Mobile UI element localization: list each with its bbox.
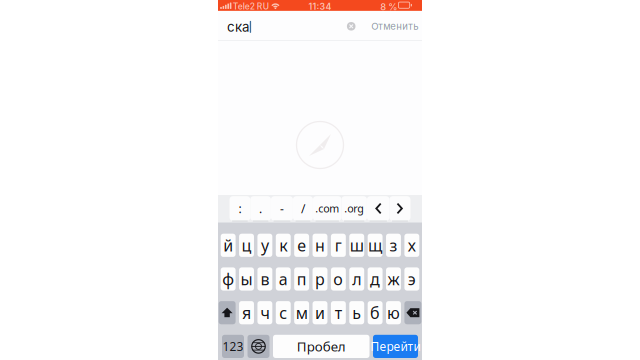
button[interactable]: ш [349,234,364,257]
staticText: 8 % [380,1,397,12]
staticText: 11:34 [308,1,331,12]
button[interactable]: Пробел [273,335,369,358]
button[interactable]: я [239,301,254,324]
staticText: Отменить [371,20,418,32]
button[interactable]: Отменить [367,15,422,37]
staticText: Tele2 RU [233,1,269,11]
staticText: п [297,268,307,290]
staticText: л [352,268,361,290]
staticText: ска [227,19,249,35]
staticText: Перейти [370,338,420,354]
button[interactable]: в [257,267,272,291]
button[interactable]: н [313,234,327,257]
staticText: ф [222,268,234,290]
button[interactable]: к [276,234,291,257]
staticText: р [315,268,325,290]
staticText: - [280,200,284,216]
button[interactable]: ь [349,301,364,324]
staticText: к [279,235,287,256]
button[interactable]: р [313,267,327,291]
staticText: о [333,268,343,290]
button[interactable]: м [294,301,309,324]
staticText: я [242,302,251,323]
staticText: а [279,268,288,290]
button[interactable]: Previous field [367,196,389,221]
button[interactable]: ц [239,234,254,257]
staticText: б [370,302,380,323]
button[interactable]: ф [221,267,236,291]
button[interactable]: а [276,267,291,291]
staticText: .org [344,201,364,216]
button[interactable]: г [331,234,346,257]
staticText: ж [387,268,399,290]
staticText: у [261,235,269,256]
button[interactable]: Next field [389,196,410,221]
staticText: щ [368,235,382,256]
button[interactable]: .com [313,196,341,221]
button[interactable]: л [349,267,364,291]
staticText: и [315,302,325,323]
button[interactable]: Next keyboard [247,335,269,358]
button[interactable]: .org [341,196,367,221]
staticText: .com [315,201,339,216]
staticText: г [335,235,342,256]
staticText: м [296,302,308,323]
button[interactable]: щ [368,234,383,257]
staticText: х [408,235,416,256]
staticText: ч [260,302,269,323]
button[interactable]: Clear text [341,16,361,36]
button[interactable]: ю [386,301,401,324]
button[interactable]: у [257,234,272,257]
button[interactable]: : [230,196,250,221]
staticText: . [259,200,262,216]
button[interactable]: с [276,301,291,324]
staticText: ю [387,302,400,323]
staticText: н [315,235,325,256]
button[interactable]: з [386,234,401,257]
staticText: е [297,235,306,256]
button[interactable]: Shift [219,301,236,324]
staticText: д [370,268,380,290]
staticText: ы [240,268,252,290]
staticText: ш [350,235,364,256]
staticText: / [301,200,305,216]
button[interactable]: Delete [404,301,421,324]
button[interactable]: т [331,301,346,324]
button[interactable]: 123 [222,335,244,358]
staticText: з [389,235,397,256]
staticText: в [260,268,269,290]
button[interactable]: х [404,234,419,257]
button[interactable]: б [368,301,383,324]
staticText: й [223,235,233,256]
button[interactable]: ж [386,267,401,291]
button[interactable]: п [294,267,309,291]
button[interactable]: . [250,196,271,221]
staticText: ь [352,302,361,323]
button[interactable]: э [404,267,419,291]
button[interactable]: е [294,234,309,257]
staticText: э [408,268,416,290]
button[interactable]: Перейти [373,335,418,358]
staticText: 123 [222,338,243,354]
staticText: с [279,302,287,323]
button[interactable]: ы [239,267,254,291]
staticText: т [335,302,342,323]
staticText: : [238,200,241,216]
staticText: ц [241,235,251,256]
button[interactable]: о [331,267,346,291]
button[interactable]: й [221,234,236,257]
button[interactable]: ч [257,301,272,324]
button[interactable]: - [271,196,293,221]
staticText: Пробел [297,337,346,355]
button[interactable]: д [368,267,383,291]
button[interactable]: / [293,196,313,221]
button[interactable]: и [313,301,327,324]
